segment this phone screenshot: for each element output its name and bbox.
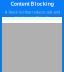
staticText: trackers on the web (15, 14, 49, 20)
staticText: Content Blocking (10, 0, 53, 7)
staticText: A block list that reduces ads and (4, 9, 59, 14)
